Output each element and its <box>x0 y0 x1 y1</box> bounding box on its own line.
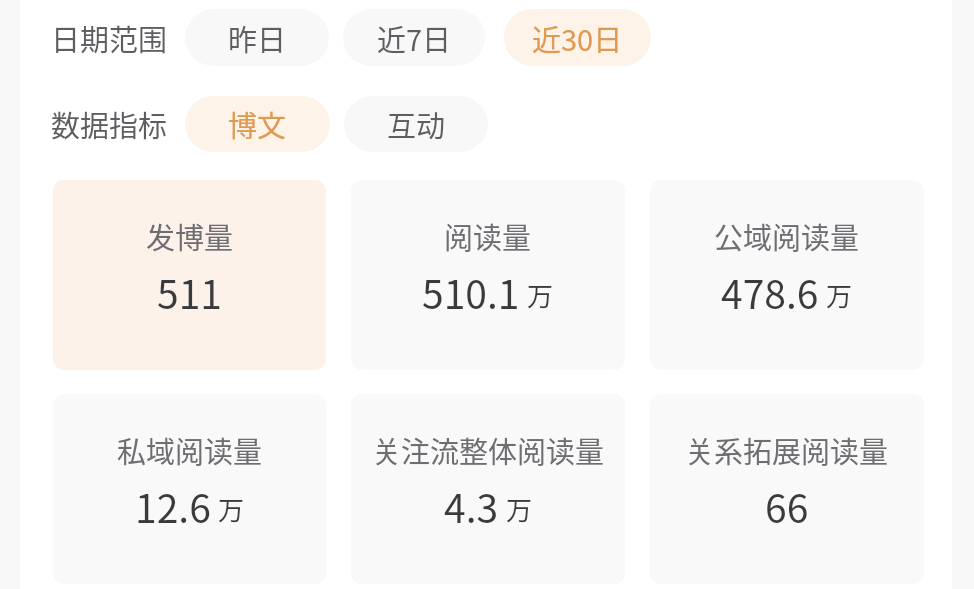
staticText: 昨日 <box>228 17 287 59</box>
staticText: 12.6 <box>135 478 211 534</box>
button[interactable]: 近7日 <box>343 9 485 66</box>
staticText: 近7日 <box>377 17 452 59</box>
staticText: 数据指标 <box>51 103 168 145</box>
staticText: 阅读量 <box>444 215 532 257</box>
staticText: 近30日 <box>532 17 623 59</box>
staticText: 关系拓展阅读量 <box>685 429 889 471</box>
staticText: 公域阅读量 <box>714 215 860 257</box>
button[interactable]: 公域阅读量 <box>650 180 924 370</box>
button[interactable]: 互动 <box>344 96 488 152</box>
staticText: 互动 <box>387 103 446 145</box>
staticText: 478.6 <box>721 264 819 320</box>
staticText: 私域阅读量 <box>117 429 263 471</box>
button[interactable]: 近30日 <box>504 9 651 66</box>
staticText: 万 <box>506 490 533 528</box>
staticText: 4.3 <box>444 478 499 534</box>
staticText: 日期范围 <box>51 17 168 59</box>
staticText: 关注流整体阅读量 <box>372 429 605 471</box>
staticText: 66 <box>765 478 809 534</box>
button[interactable]: 发博量 <box>53 180 326 370</box>
button[interactable]: 关注流整体阅读量 <box>351 394 625 584</box>
staticText: 511 <box>157 264 222 320</box>
button[interactable]: 阅读量 <box>351 180 625 370</box>
staticText: 510.1 <box>422 264 520 320</box>
staticText: 万 <box>527 276 554 314</box>
staticText: 博文 <box>228 103 287 145</box>
staticText: 万 <box>218 490 245 528</box>
staticText: 万 <box>826 276 853 314</box>
button[interactable]: 私域阅读量 <box>53 394 326 584</box>
staticText: 发博量 <box>146 215 234 257</box>
button[interactable]: 博文 <box>185 96 330 152</box>
button[interactable]: 昨日 <box>185 9 329 66</box>
button[interactable]: 关系拓展阅读量 <box>650 394 924 584</box>
